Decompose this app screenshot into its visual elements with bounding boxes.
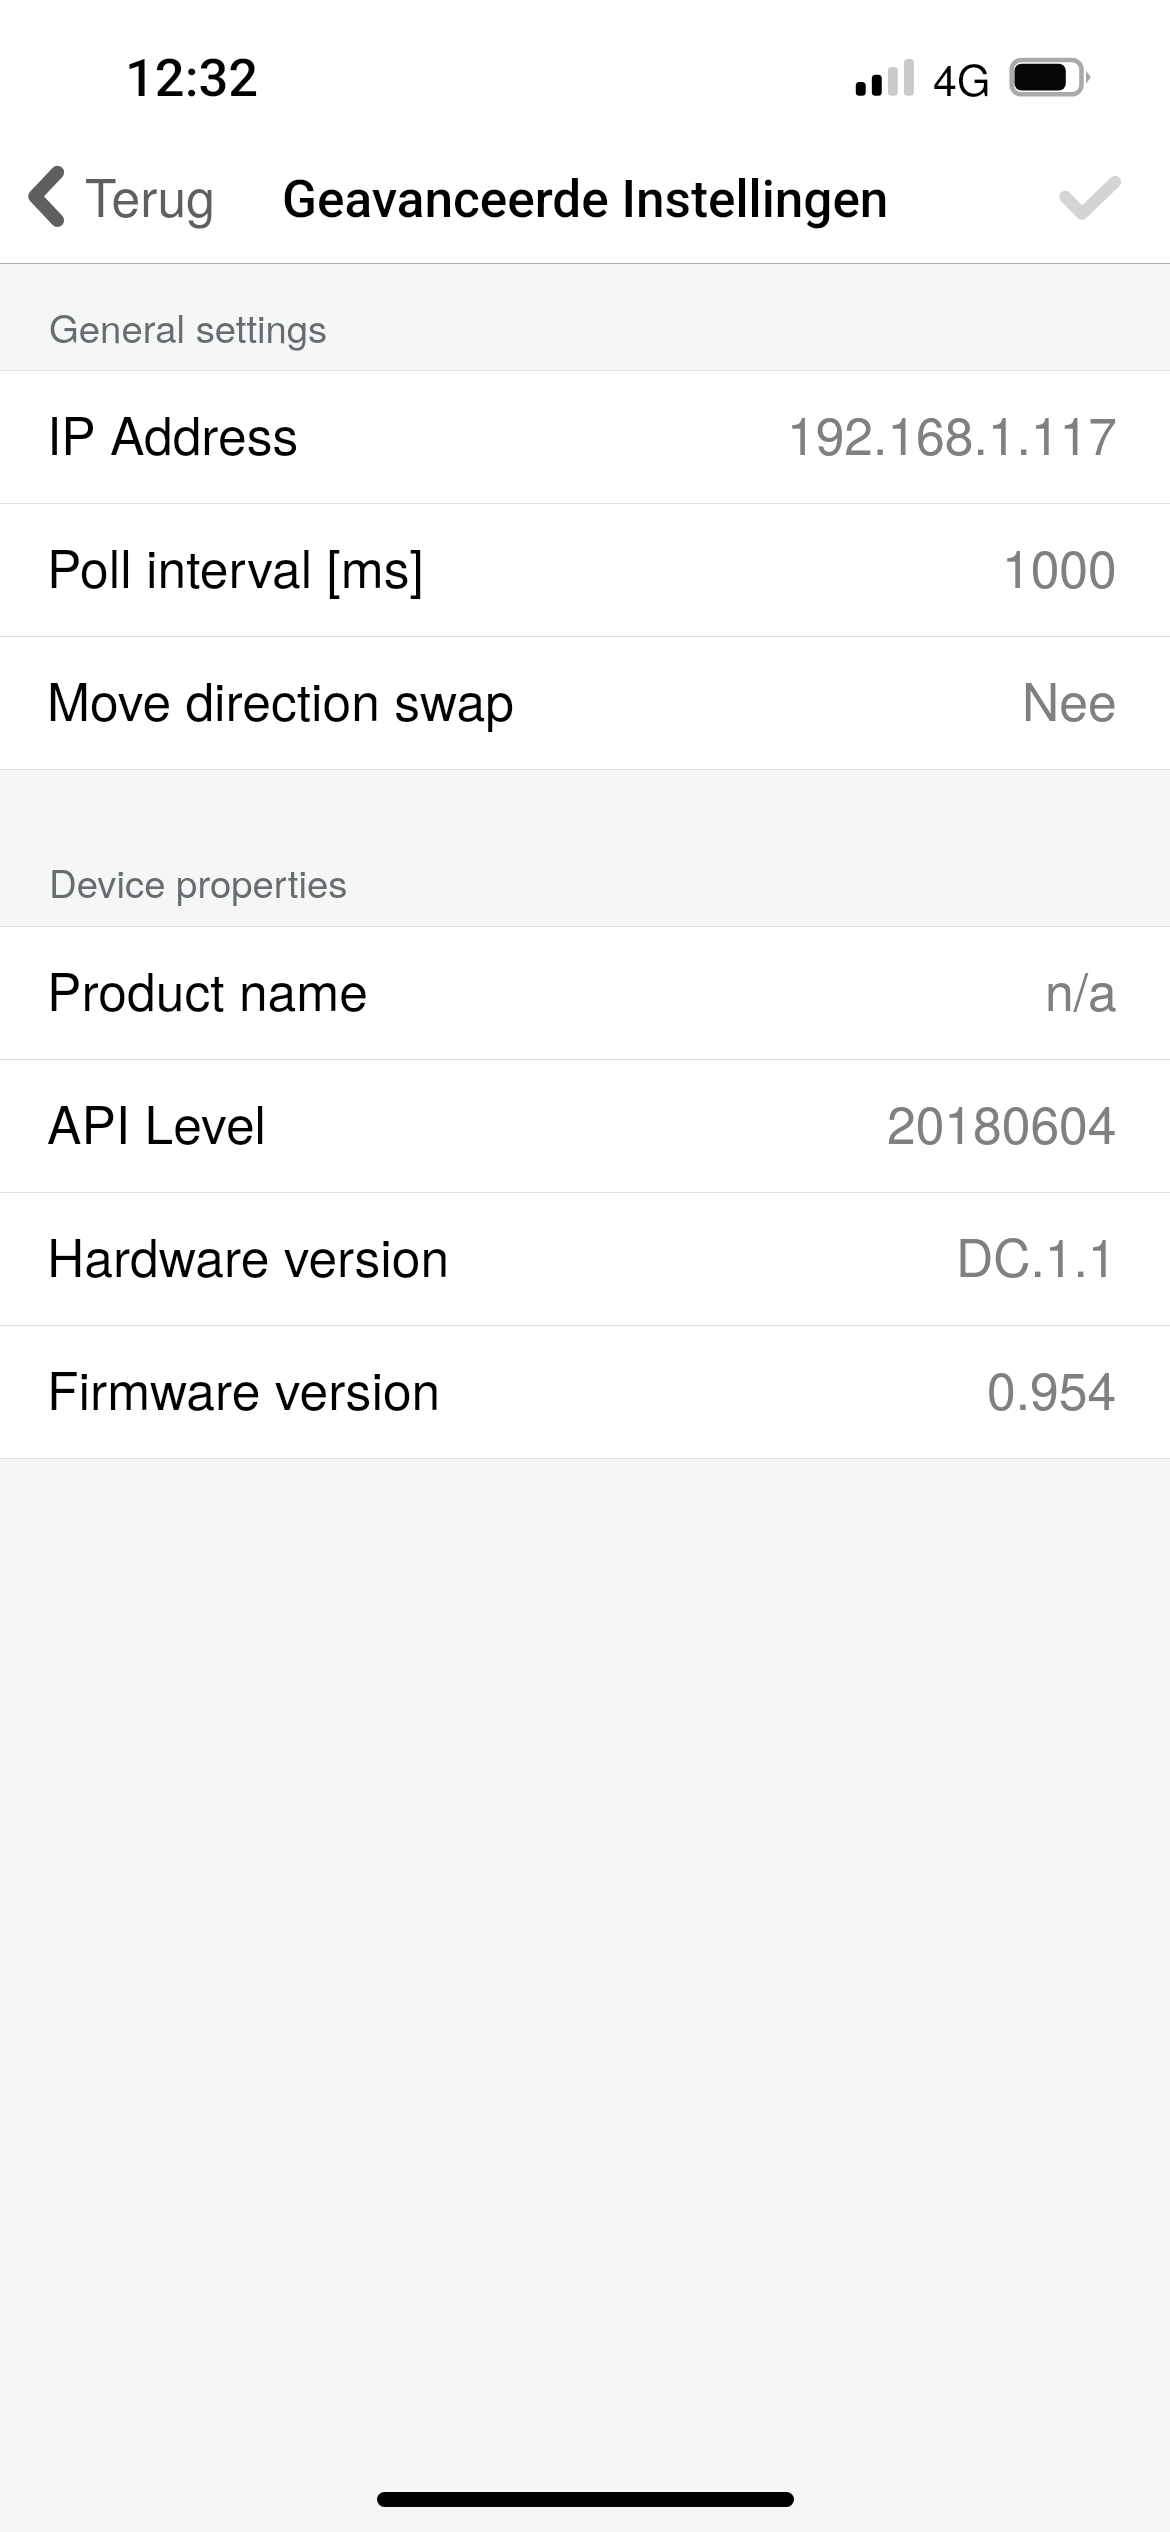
staticText: General settings [49,299,328,354]
staticText: Product name [47,952,368,1026]
staticText: Device properties [49,854,348,909]
staticText: 0.954 [987,1351,1117,1425]
button[interactable]: Terug [0,132,228,263]
button[interactable]: Move direction swap [0,637,1170,770]
staticText: 12:32 [125,47,259,109]
button[interactable]: Poll interval [ms] [0,504,1170,637]
button[interactable]: Confirm [1040,132,1170,263]
button[interactable]: Firmware version [0,1326,1170,1459]
staticText: Hardware version [47,1218,450,1292]
staticText: 1000 [1002,529,1117,603]
staticText: 192.168.1.117 [787,396,1117,470]
staticText: IP Address [47,396,299,470]
staticText: Firmware version [47,1351,441,1425]
button[interactable]: API Level [0,1060,1170,1193]
staticText: Nee [1022,662,1117,736]
staticText: 20180604 [887,1085,1117,1159]
staticText: API Level [47,1085,267,1159]
staticText: n/a [1045,952,1117,1026]
staticText: Poll interval [ms] [47,529,424,603]
staticText: Move direction swap [47,662,514,736]
button[interactable]: Product name [0,927,1170,1060]
staticText: Terug [85,158,215,232]
staticText: DC.1.1 [956,1218,1117,1292]
staticText: 4G [933,47,991,109]
staticText: Geavanceerde Instellingen [282,169,889,229]
button[interactable]: IP Address [0,371,1170,504]
button[interactable]: Hardware version [0,1193,1170,1326]
